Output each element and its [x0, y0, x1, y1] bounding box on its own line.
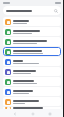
button[interactable] [3, 77, 61, 86]
button[interactable] [3, 37, 61, 46]
button[interactable] [3, 67, 61, 76]
button[interactable]: Back [11, 110, 18, 117]
button[interactable] [3, 17, 61, 26]
button[interactable] [3, 87, 61, 96]
other: Search [54, 9, 58, 13]
button[interactable] [3, 27, 61, 36]
button[interactable] [3, 107, 61, 109]
button[interactable] [3, 47, 61, 56]
button[interactable] [3, 57, 61, 66]
button[interactable]: Recent apps [46, 110, 53, 117]
button[interactable]: Search [3, 6, 61, 15]
button[interactable] [3, 97, 61, 106]
button[interactable]: Home [29, 110, 36, 117]
